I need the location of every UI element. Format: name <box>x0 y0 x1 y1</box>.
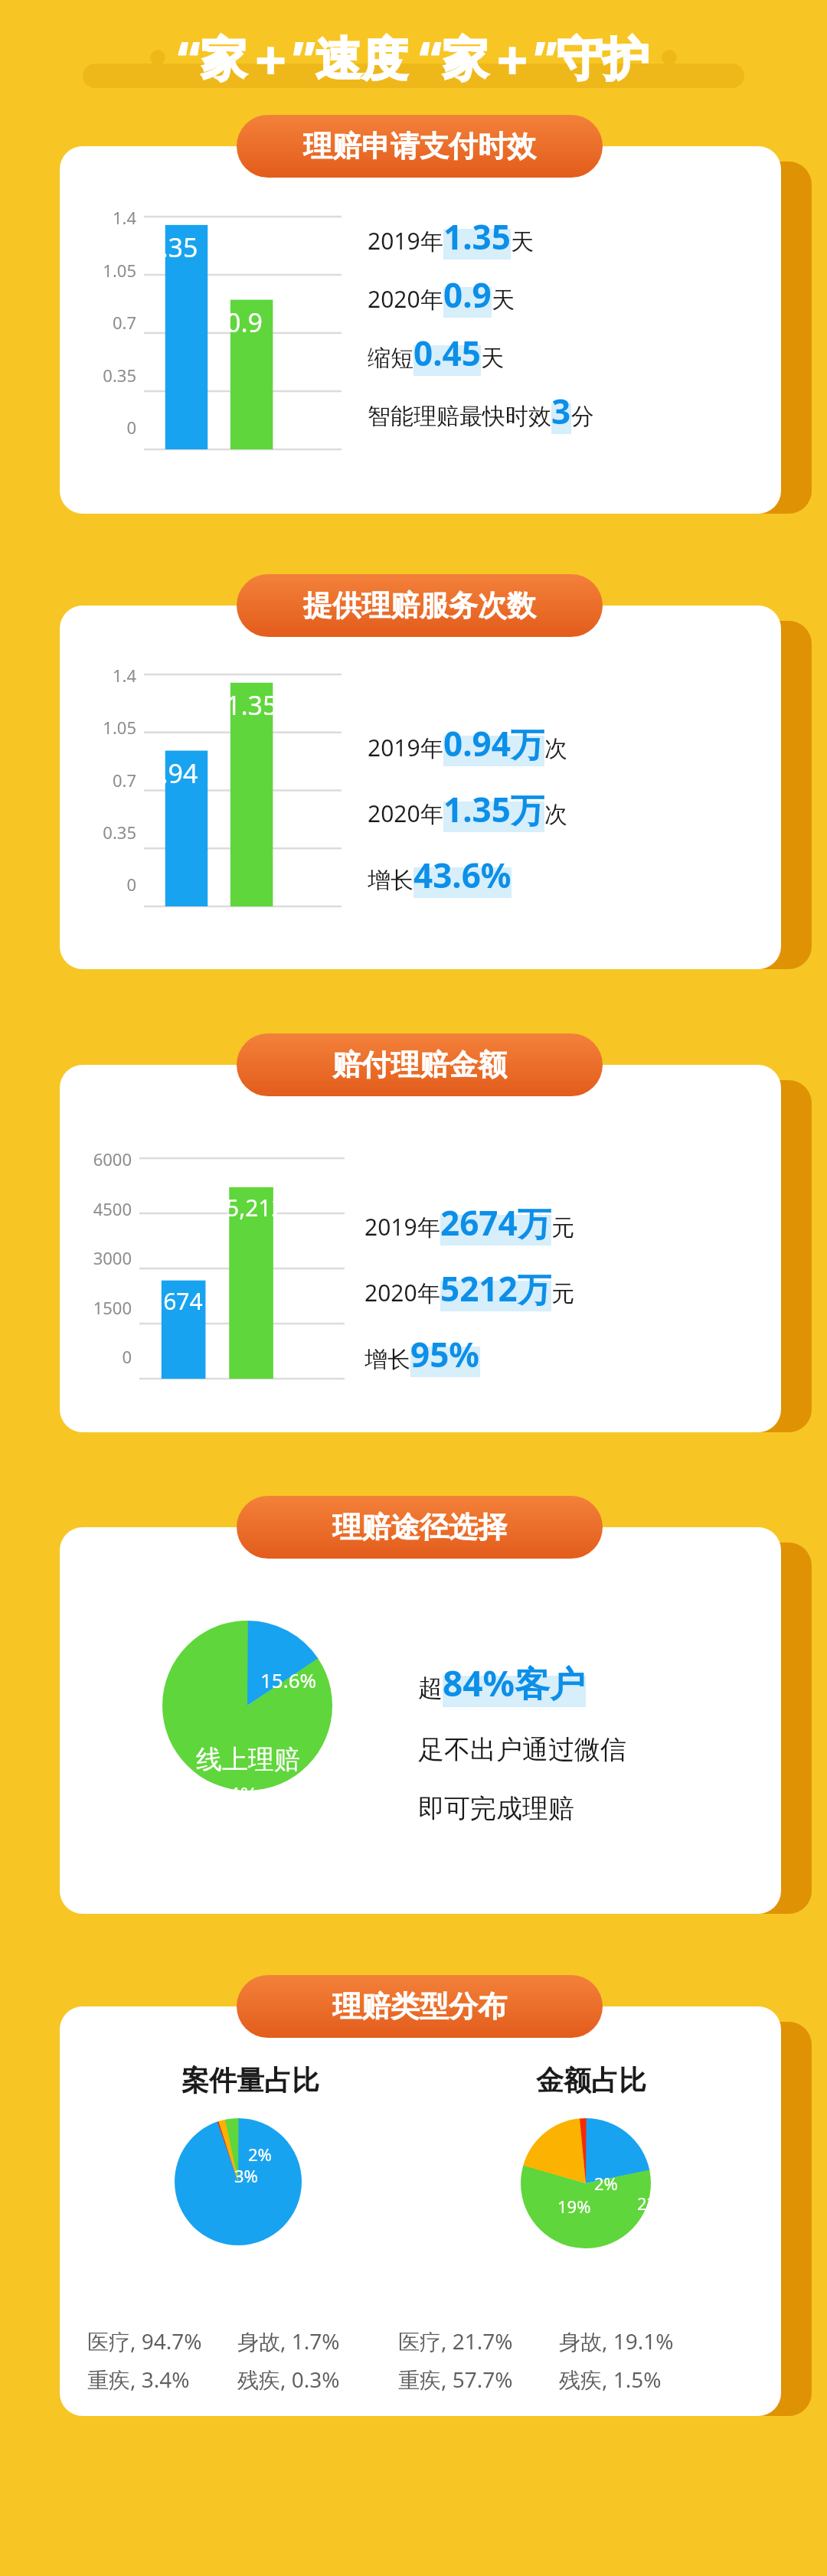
staticText: 提供理赔服务次数 <box>303 587 536 624</box>
staticText: 2019年 <box>368 225 443 256</box>
staticText: 次 <box>544 734 567 763</box>
staticText: 0.9 <box>443 272 492 318</box>
staticText: 0.35 <box>74 821 136 844</box>
staticText: 1.35万 <box>443 786 544 832</box>
staticText: 3% <box>234 2164 258 2187</box>
button[interactable]: 案件量占比 <box>60 2006 781 2416</box>
staticText: 0.45 <box>413 330 481 376</box>
button[interactable]: 15.6% <box>60 1527 781 1914</box>
staticText: 金额占比 <box>536 2063 646 2098</box>
staticText: 2,674 <box>144 1285 203 1317</box>
staticText: 1.35 <box>226 687 278 723</box>
staticText: 1.4 <box>74 206 136 229</box>
button[interactable]: 提供理赔服务次数 <box>237 574 603 637</box>
staticText: 1.05 <box>74 716 136 739</box>
staticText: 3000 <box>69 1246 132 1269</box>
staticText: 残疾, 0.3% <box>237 2365 340 2394</box>
staticText: 1.35 <box>443 214 511 260</box>
button[interactable]: 理赔途径选择 <box>237 1496 603 1559</box>
button[interactable]: 赔付理赔金额 <box>237 1033 603 1096</box>
staticText: 2019年 <box>368 732 443 763</box>
staticText: 天 <box>511 227 534 256</box>
staticText: 2020年 <box>368 283 443 315</box>
staticText: 智能理赔最快时效 <box>368 402 551 431</box>
button[interactable]: 1.4 <box>60 146 781 514</box>
button[interactable]: 理赔类型分布 <box>237 1975 603 2038</box>
staticText: 次 <box>544 800 567 829</box>
button[interactable]: 6000 <box>60 1065 781 1432</box>
staticText: 5,212 <box>226 1192 285 1223</box>
staticText: 足不出户通过微信 <box>418 1733 626 1766</box>
staticText: 2020年 <box>368 798 443 829</box>
staticText: 残疾, 1.5% <box>559 2365 662 2394</box>
staticText: 0.7 <box>74 311 136 334</box>
staticText: 22% <box>637 2192 671 2215</box>
staticText: 增长 <box>368 866 413 895</box>
staticText: 缩短 <box>368 344 413 373</box>
staticText: 理赔类型分布 <box>332 1988 507 2025</box>
staticText: 4500 <box>69 1197 132 1220</box>
staticText: 身故, 1.7% <box>237 2326 340 2356</box>
staticText: 元 <box>551 1213 574 1242</box>
staticText: 2% <box>248 2143 272 2166</box>
staticText: 分 <box>571 402 594 431</box>
staticText: 超 <box>418 1673 443 1703</box>
staticText: 医疗, 21.7% <box>398 2326 559 2356</box>
staticText: 0.94 <box>146 756 198 791</box>
staticText: 3 <box>551 388 571 434</box>
staticText: 重疾, 57.7% <box>398 2365 559 2394</box>
staticText: 2020年 <box>364 1277 440 1308</box>
staticText: 身故, 19.1% <box>559 2326 674 2356</box>
staticText: 天 <box>481 344 504 373</box>
staticText: 天 <box>492 286 515 315</box>
staticText: 0 <box>74 416 136 439</box>
staticText: 案件量占比 <box>181 2063 319 2098</box>
staticText: 0.35 <box>74 364 136 387</box>
button[interactable]: 1.4 <box>60 606 781 969</box>
staticText: 0 <box>69 1345 132 1368</box>
staticText: 2019年 <box>364 1211 440 1242</box>
staticText: 5212万 <box>440 1265 551 1311</box>
staticText: 19% <box>557 2195 591 2218</box>
staticText: 线上理赔 <box>196 1743 300 1776</box>
staticText: 6000 <box>69 1148 132 1170</box>
staticText: 0.7 <box>74 769 136 792</box>
staticText: 0.9 <box>226 305 263 340</box>
staticText: 0 <box>74 873 136 896</box>
staticText: 重疾, 3.4% <box>87 2365 237 2394</box>
staticText: 2% <box>594 2172 618 2195</box>
staticText: 理赔申请支付时效 <box>303 128 536 165</box>
staticText: 元 <box>551 1279 574 1308</box>
staticText: 2674万 <box>440 1200 551 1246</box>
staticText: 95% <box>410 1331 480 1377</box>
staticText: 医疗, 94.7% <box>87 2326 237 2356</box>
staticText: 84.4% <box>198 1780 258 1809</box>
staticText: 43.6% <box>413 852 512 898</box>
staticText: 1500 <box>69 1296 132 1319</box>
staticText: “家＋”速度 “家＋”守护 <box>178 26 649 89</box>
staticText: 1.4 <box>74 664 136 687</box>
staticText: 赔付理赔金额 <box>332 1046 507 1083</box>
staticText: 84%客户 <box>443 1659 586 1707</box>
staticText: 1.35 <box>146 230 198 265</box>
staticText: 理赔途径选择 <box>332 1509 507 1546</box>
staticText: 增长 <box>364 1345 410 1374</box>
staticText: 15.6% <box>260 1667 317 1693</box>
staticText: 即可完成理赔 <box>418 1792 574 1825</box>
staticText: 1.05 <box>74 259 136 282</box>
staticText: 0.94万 <box>443 720 544 766</box>
button[interactable]: 理赔申请支付时效 <box>237 115 603 178</box>
